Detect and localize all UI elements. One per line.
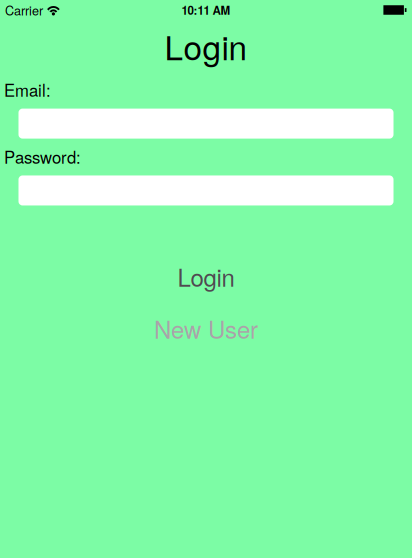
staticText: Password: xyxy=(4,145,81,168)
button[interactable]: Email xyxy=(18,109,393,139)
staticText: Login xyxy=(177,259,234,294)
button[interactable]: Login xyxy=(0,259,412,293)
staticText: Email: xyxy=(4,78,51,102)
button[interactable]: New User xyxy=(0,311,412,345)
staticText: New User xyxy=(154,311,258,346)
staticText: 10:11 AM xyxy=(181,2,230,18)
button[interactable]: Password xyxy=(18,175,393,205)
staticText: Login xyxy=(164,22,247,70)
staticText: Carrier xyxy=(5,1,43,19)
